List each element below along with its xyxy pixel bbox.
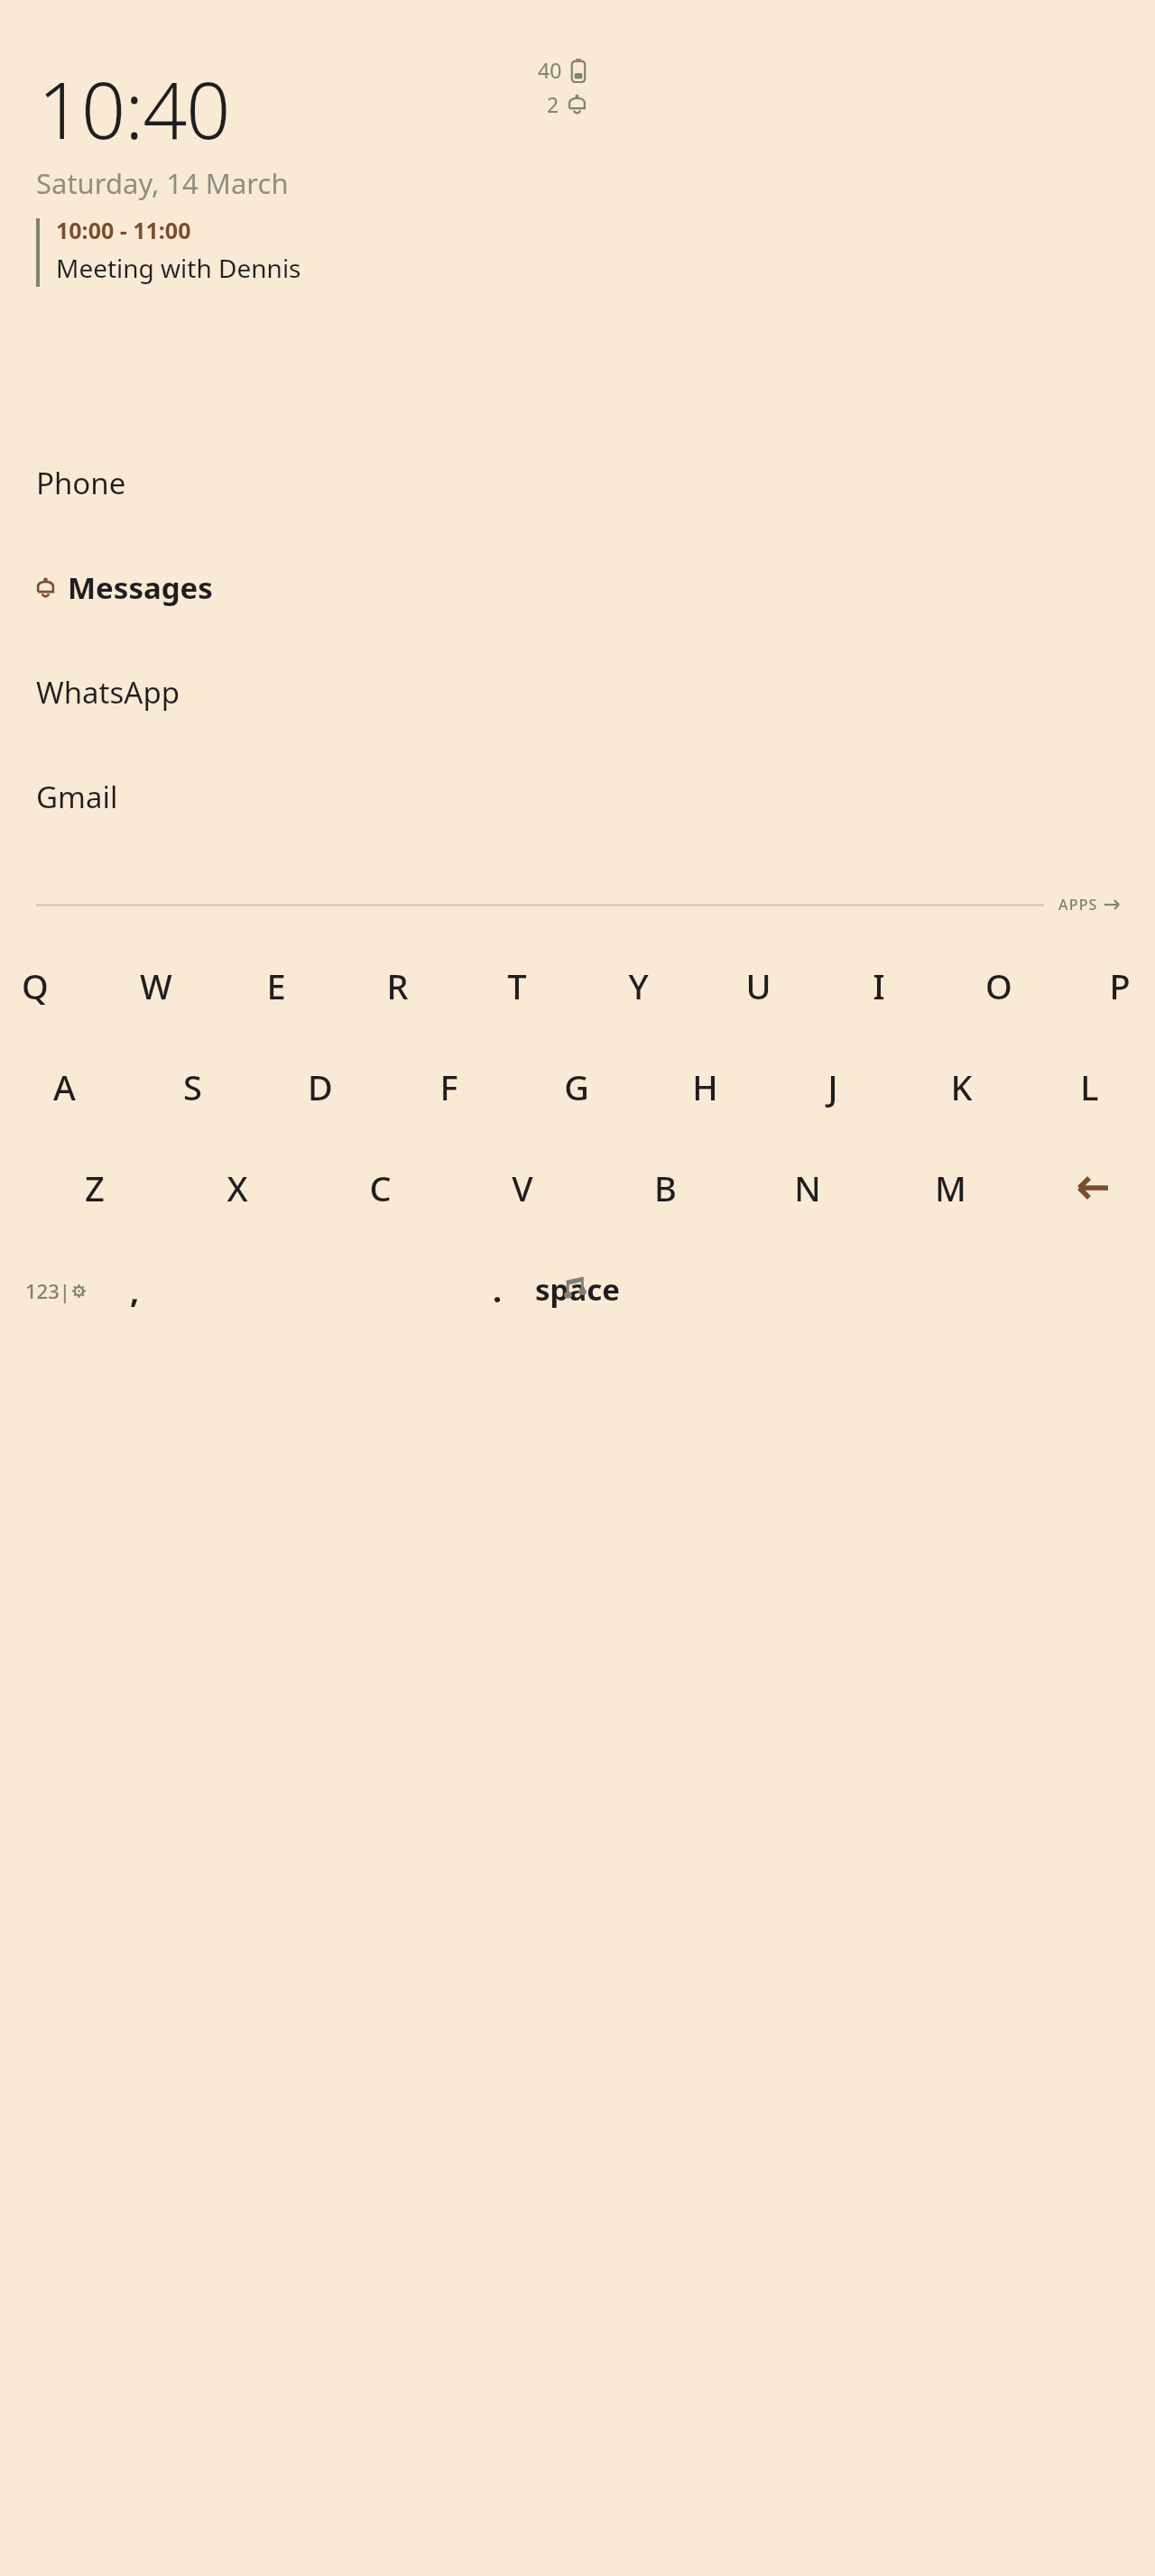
- staticText: Z: [85, 1164, 105, 1211]
- staticText: C: [369, 1164, 392, 1211]
- button[interactable]: Music: [550, 1261, 601, 1315]
- staticText: O: [985, 962, 1012, 1009]
- button[interactable]: M: [926, 1155, 975, 1221]
- staticText: J: [827, 1063, 838, 1110]
- button[interactable]: H: [682, 1053, 727, 1120]
- staticText: W: [140, 962, 172, 1009]
- staticText: 2: [547, 90, 559, 118]
- button[interactable]: 2 notifications: [469, 90, 587, 118]
- staticText: A: [53, 1063, 76, 1110]
- staticText: R: [386, 962, 409, 1009]
- staticText: U: [745, 962, 772, 1009]
- button[interactable]: Y: [615, 952, 661, 1019]
- staticText: T: [507, 962, 527, 1009]
- button[interactable]: V: [498, 1155, 547, 1221]
- staticText: E: [266, 962, 286, 1009]
- staticText: D: [308, 1063, 333, 1110]
- staticText: X: [226, 1164, 248, 1211]
- button[interactable]: R: [374, 952, 420, 1019]
- staticText: B: [654, 1164, 677, 1211]
- button[interactable]: Saturday, 14 March: [36, 164, 289, 202]
- staticText: 40: [538, 56, 562, 84]
- staticText: Q: [22, 962, 49, 1009]
- button[interactable]: 10:00 - 11:00: [36, 215, 415, 285]
- button[interactable]: J: [810, 1053, 855, 1120]
- staticText: Gmail: [36, 777, 118, 817]
- button[interactable]: A: [42, 1053, 87, 1120]
- button[interactable]: D: [298, 1053, 343, 1120]
- staticText: Messages: [68, 567, 213, 608]
- button[interactable]: .: [475, 1263, 520, 1317]
- button[interactable]: S: [170, 1053, 215, 1120]
- button[interactable]: P: [1097, 952, 1142, 1019]
- staticText: ,: [130, 1268, 140, 1312]
- staticText: V: [512, 1164, 533, 1211]
- staticText: 123|: [25, 1277, 70, 1304]
- button[interactable]: Gmail: [0, 768, 1155, 824]
- button[interactable]: U: [735, 952, 781, 1019]
- staticText: L: [1080, 1063, 1099, 1110]
- button[interactable]: Numbers and settings: [25, 1270, 88, 1311]
- button[interactable]: B: [641, 1155, 689, 1221]
- button[interactable]: Backspace: [1068, 1155, 1117, 1221]
- button[interactable]: G: [554, 1053, 599, 1120]
- button[interactable]: F: [426, 1053, 471, 1120]
- staticText: P: [1109, 962, 1131, 1009]
- staticText: S: [183, 1063, 202, 1110]
- staticText: 10:40: [38, 56, 230, 161]
- staticText: M: [935, 1164, 966, 1211]
- button[interactable]: Phone: [0, 455, 1155, 511]
- button[interactable]: L: [1067, 1053, 1112, 1120]
- staticText: space: [535, 1269, 620, 1310]
- staticText: Meeting with Dennis: [56, 251, 301, 285]
- button[interactable]: W: [134, 952, 179, 1019]
- staticText: K: [950, 1063, 973, 1110]
- staticText: H: [692, 1063, 718, 1110]
- button[interactable]: Messages: [0, 559, 1155, 615]
- staticText: N: [794, 1164, 821, 1211]
- button[interactable]: N: [783, 1155, 832, 1221]
- button[interactable]: WhatsApp: [0, 664, 1155, 720]
- button[interactable]: Q: [13, 952, 58, 1019]
- staticText: Y: [628, 962, 649, 1009]
- button[interactable]: T: [494, 952, 540, 1019]
- staticText: G: [564, 1063, 589, 1110]
- button[interactable]: APPS: [36, 895, 1119, 915]
- button[interactable]: K: [938, 1053, 984, 1120]
- button[interactable]: space: [487, 1261, 668, 1317]
- button[interactable]: ,: [108, 1263, 161, 1317]
- button[interactable]: X: [213, 1155, 262, 1221]
- button[interactable]: Z: [70, 1155, 119, 1221]
- staticText: F: [439, 1063, 458, 1110]
- staticText: .: [493, 1268, 503, 1312]
- button[interactable]: I: [856, 952, 901, 1019]
- staticText: APPS: [1058, 895, 1098, 915]
- staticText: Phone: [36, 463, 126, 503]
- staticText: 10:00 - 11:00: [56, 215, 191, 245]
- button[interactable]: O: [976, 952, 1021, 1019]
- button[interactable]: C: [356, 1155, 404, 1221]
- staticText: WhatsApp: [36, 672, 180, 713]
- staticText: I: [873, 962, 885, 1009]
- button[interactable]: E: [254, 952, 299, 1019]
- button[interactable]: Battery 40 percent: [469, 56, 587, 84]
